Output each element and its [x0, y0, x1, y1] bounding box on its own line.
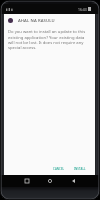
button[interactable]: INSTALL	[70, 165, 90, 173]
staticText: AHAL NA RASULU	[18, 18, 55, 24]
button[interactable]: CANCEL	[49, 165, 69, 173]
button[interactable]: Home	[44, 175, 56, 187]
staticText: Do you want to install an update to this…	[8, 29, 91, 50]
button[interactable]: Back	[67, 175, 79, 187]
staticText: 16:43	[78, 7, 87, 12]
button[interactable]: Recent apps	[21, 175, 33, 187]
